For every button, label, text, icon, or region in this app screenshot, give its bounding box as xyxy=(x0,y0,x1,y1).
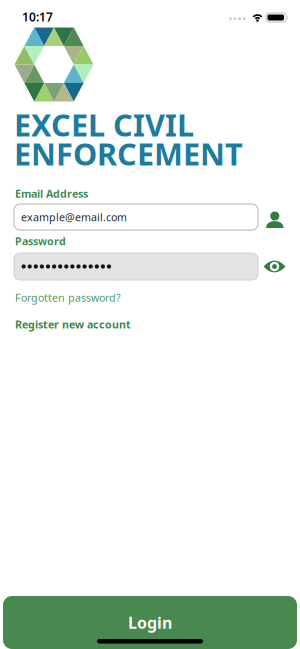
button[interactable]: Register new account xyxy=(15,317,131,331)
staticText: example@email.com xyxy=(21,210,127,224)
staticText: 10:17 xyxy=(22,9,53,25)
staticText: Password xyxy=(15,234,66,248)
staticText: Login xyxy=(128,612,172,633)
button[interactable]: Login xyxy=(3,596,297,649)
staticText: EXCEL CIVIL xyxy=(14,104,194,145)
button[interactable]: Show password xyxy=(263,260,285,273)
staticText: ENFORCEMENT xyxy=(14,133,243,174)
staticText: Forgotten password? xyxy=(15,290,121,305)
button[interactable]: Forgotten password? xyxy=(15,290,121,305)
staticText: Email Address xyxy=(15,186,88,201)
staticText: Register new account xyxy=(15,317,131,331)
